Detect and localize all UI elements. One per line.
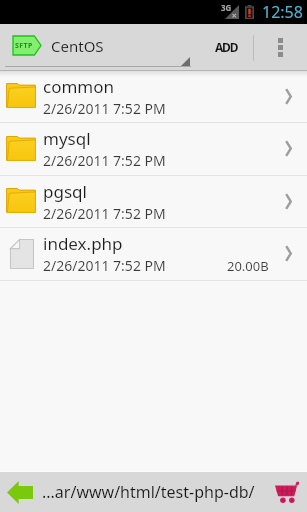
button[interactable]: index.php — [0, 228, 307, 281]
button[interactable]: Cart — [259, 472, 307, 512]
staticText: common — [43, 75, 115, 98]
button[interactable]: SFTP — [0, 24, 192, 71]
button[interactable]: mysql — [0, 123, 307, 176]
staticText: SFTP — [15, 41, 33, 51]
staticText: 2/26/2011 7:52 PM — [43, 99, 166, 118]
staticText: 2/26/2011 7:52 PM — [43, 256, 166, 275]
staticText: index.php — [43, 232, 123, 255]
staticText: 2/26/2011 7:52 PM — [43, 151, 166, 170]
staticText: 3G — [221, 2, 232, 13]
button[interactable]: common — [0, 71, 307, 123]
button[interactable]: More options — [254, 24, 307, 71]
staticText: CentOS — [51, 36, 104, 56]
staticText: 20.00B — [227, 257, 269, 275]
staticText: 2/26/2011 7:52 PM — [43, 204, 166, 223]
staticText: pgsql — [43, 180, 87, 203]
staticText: mysql — [43, 127, 91, 150]
staticText: ...ar/www/html/test-php-db/ — [42, 481, 263, 503]
button[interactable]: ADD — [192, 24, 253, 71]
button[interactable]: Back — [0, 472, 38, 512]
staticText: 12:58 — [262, 1, 303, 23]
button[interactable]: pgsql — [0, 176, 307, 228]
staticText: ADD — [215, 39, 238, 55]
